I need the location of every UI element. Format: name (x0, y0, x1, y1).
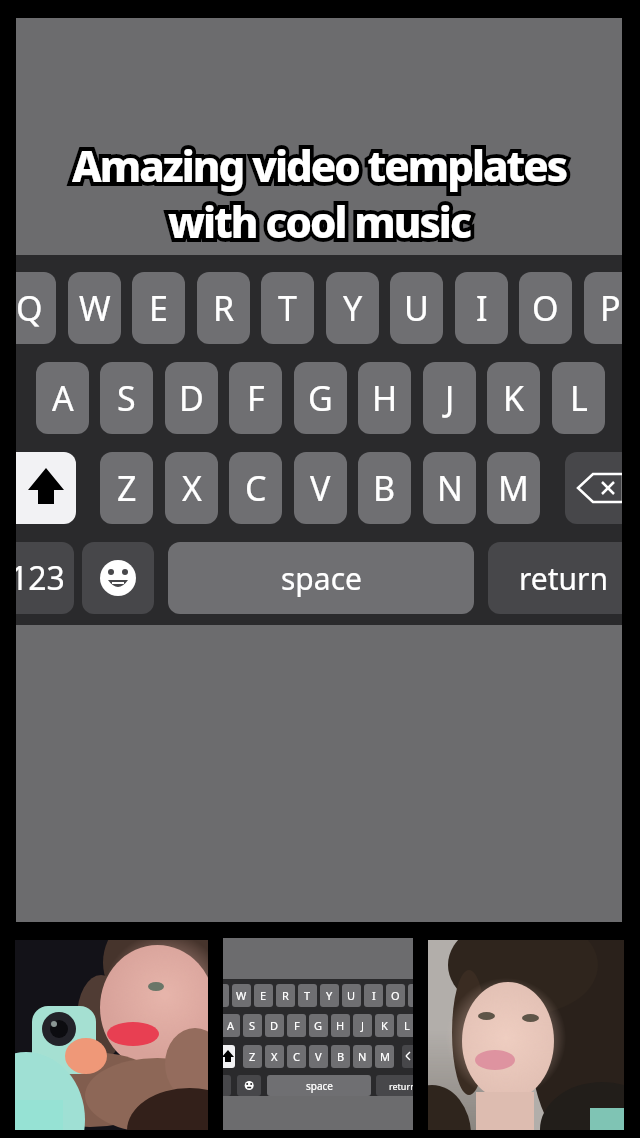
staticText: C (293, 1049, 300, 1064)
button[interactable]: J (423, 362, 476, 434)
staticText: B (373, 465, 396, 511)
button[interactable]: C (229, 452, 282, 524)
staticText: I (372, 988, 376, 1003)
button[interactable]: N (423, 452, 476, 524)
button[interactable]: B (358, 452, 411, 524)
staticText: return (519, 558, 609, 599)
button[interactable]: R (197, 272, 250, 344)
staticText: space (281, 558, 362, 599)
staticText: V (315, 1049, 322, 1064)
staticText: Amazing video templates (72, 137, 567, 194)
button[interactable]: F (229, 362, 282, 434)
staticText: I (476, 285, 488, 331)
button[interactable]: W (68, 272, 121, 344)
staticText: V (310, 465, 331, 511)
staticText: U (347, 988, 356, 1003)
staticText: W (79, 285, 111, 331)
staticText: T (304, 988, 311, 1003)
staticText: J (445, 375, 455, 421)
staticText: Q (16, 285, 43, 331)
button[interactable] (428, 940, 624, 1130)
staticText: R (213, 285, 235, 331)
staticText: W (236, 988, 247, 1003)
button[interactable]: I (455, 272, 508, 344)
button[interactable]: H (358, 362, 411, 434)
staticText: H (372, 375, 398, 421)
staticText: K (381, 1018, 388, 1033)
button[interactable]: A (36, 362, 89, 434)
staticText: O (391, 988, 400, 1003)
button[interactable]: G (294, 362, 347, 434)
staticText: R (282, 988, 289, 1003)
staticText: P (600, 285, 621, 331)
staticText: J (361, 1018, 365, 1033)
button[interactable]: S (100, 362, 153, 434)
staticText: S (249, 1018, 256, 1033)
staticText: D (270, 1018, 279, 1033)
button[interactable] (15, 940, 208, 1130)
button[interactable]: space (168, 542, 474, 614)
staticText: E (260, 988, 267, 1003)
staticText: L (404, 1018, 410, 1033)
staticText: N (437, 465, 463, 511)
button[interactable]: O (519, 272, 572, 344)
staticText: L (570, 375, 588, 421)
staticText: M (498, 465, 529, 511)
button[interactable]: V (294, 452, 347, 524)
button[interactable]: P (584, 272, 622, 344)
button[interactable]: D (165, 362, 218, 434)
button[interactable] (16, 452, 76, 524)
staticText: G (314, 1018, 323, 1033)
staticText: H (336, 1018, 345, 1033)
staticText: Z (117, 465, 137, 511)
staticText: N (358, 1049, 367, 1064)
staticText: Y (326, 988, 333, 1003)
staticText: S (117, 375, 136, 421)
staticText: A (52, 375, 74, 421)
button[interactable]: Z (100, 452, 153, 524)
staticText: A (227, 1018, 235, 1033)
staticText: with cool music (168, 193, 471, 250)
staticText: E (149, 285, 168, 331)
button[interactable]: K (487, 362, 540, 434)
staticText: F (294, 1018, 300, 1033)
staticText: F (247, 375, 265, 421)
staticText: U (404, 285, 429, 331)
button[interactable]: U (390, 272, 443, 344)
staticText: Y (343, 285, 363, 331)
staticText: X (271, 1049, 278, 1064)
staticText: X (182, 465, 202, 511)
button[interactable]: X (165, 452, 218, 524)
staticText: K (503, 375, 525, 421)
staticText: C (245, 465, 267, 511)
staticText: T (278, 285, 297, 331)
staticText: return (389, 1080, 413, 1092)
button[interactable]: M (487, 452, 540, 524)
staticText: M (380, 1049, 390, 1064)
staticText: with cool music (168, 193, 471, 250)
button[interactable] (82, 542, 154, 614)
staticText: O (532, 285, 559, 331)
button[interactable] (565, 452, 622, 524)
staticText: B (337, 1049, 345, 1064)
button[interactable]: Q (16, 272, 56, 344)
button[interactable]: L (552, 362, 605, 434)
button[interactable]: 123 (16, 542, 74, 614)
staticText: G (308, 375, 333, 421)
button[interactable]: E (132, 272, 185, 344)
staticText: D (179, 375, 204, 421)
staticText: Z (249, 1049, 256, 1064)
staticText: 123 (16, 556, 65, 600)
button[interactable]: T (261, 272, 314, 344)
button[interactable]: return (488, 542, 622, 614)
staticText: space (306, 1079, 333, 1093)
button[interactable]: Y (326, 272, 379, 344)
staticText: Amazing video templates (72, 137, 567, 194)
button[interactable]: Q (223, 938, 413, 1130)
